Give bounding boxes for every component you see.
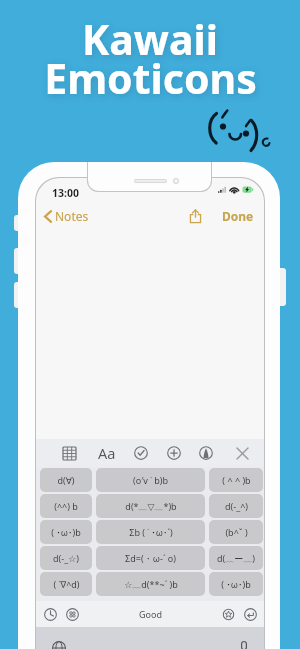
button[interactable]: Recents — [39, 601, 61, 627]
button[interactable]: Favorites — [217, 601, 239, 627]
button[interactable]: Share — [187, 207, 203, 225]
button[interactable]: Good — [83, 601, 217, 627]
button[interactable]: (b^ˇ ) — [209, 520, 263, 544]
button[interactable]: ( ･ω･)b — [40, 520, 92, 544]
staticText: d(﹏ー﹏) — [217, 552, 255, 564]
button[interactable]: ( ･ω･)b — [209, 572, 263, 596]
staticText: ( ˙∇^d) — [53, 578, 80, 590]
button[interactable]: Return — [239, 601, 261, 627]
staticText: Kawaii — [82, 11, 218, 67]
button[interactable]: Table — [59, 443, 79, 463]
staticText: d(*﹏▽﹏*)b — [125, 500, 177, 512]
staticText: Good — [139, 608, 162, 620]
button[interactable]: (^^) b — [40, 494, 92, 518]
button[interactable]: Notes — [44, 208, 89, 224]
staticText: Σd=( ･ ω-´ o) — [125, 552, 176, 564]
staticText: Notes — [55, 208, 89, 224]
staticText: ☆﹏d(**~´ )b — [124, 578, 178, 590]
button[interactable]: d(*﹏▽﹏*)b — [96, 494, 205, 518]
staticText: Emoticons — [44, 50, 257, 106]
button[interactable]: (o′v ˙ b)b — [96, 468, 205, 492]
staticText: 13:00 — [52, 186, 79, 200]
staticText: d(-_^) — [225, 500, 248, 512]
staticText: (o′v ˙ b)b — [133, 474, 168, 486]
staticText: (b^ˇ ) — [225, 526, 248, 538]
staticText: (^^) b — [54, 500, 78, 512]
button[interactable]: d(-_^) — [209, 494, 263, 518]
button[interactable]: Emoji categories — [61, 601, 83, 627]
button[interactable]: Aa — [96, 441, 118, 465]
button[interactable]: Attach — [164, 443, 184, 463]
button[interactable]: d(-_☆) — [40, 546, 92, 570]
button[interactable]: Switch keyboard — [49, 638, 69, 649]
button[interactable]: Close keyboard — [232, 443, 253, 464]
staticText: d(-_☆) — [53, 552, 79, 564]
staticText: Aa — [98, 443, 116, 463]
button[interactable]: Σb ( ˙ ･ω･´) — [96, 520, 205, 544]
button[interactable]: Checklist — [131, 443, 151, 463]
staticText: ( ･ω･)b — [221, 578, 251, 590]
staticText: d(∀) — [57, 474, 75, 486]
staticText: Done — [222, 208, 254, 224]
button[interactable]: d(﹏ー﹏) — [209, 546, 263, 570]
button[interactable]: Dictation — [234, 638, 254, 649]
staticText: Σb ( ˙ ･ω･´) — [129, 526, 173, 538]
button[interactable]: ( ˙∇^d) — [40, 572, 92, 596]
button[interactable]: Σd=( ･ ω-´ o) — [96, 546, 205, 570]
button[interactable]: ☆﹏d(**~´ )b — [96, 572, 205, 596]
staticText: ( ^ ^ )b — [222, 474, 251, 486]
staticText: ( ･ω･)b — [51, 526, 81, 538]
button[interactable]: d(∀) — [40, 468, 92, 492]
button[interactable]: Markup — [196, 443, 216, 463]
button[interactable]: Done — [220, 206, 256, 226]
button[interactable]: ( ^ ^ )b — [209, 468, 263, 492]
